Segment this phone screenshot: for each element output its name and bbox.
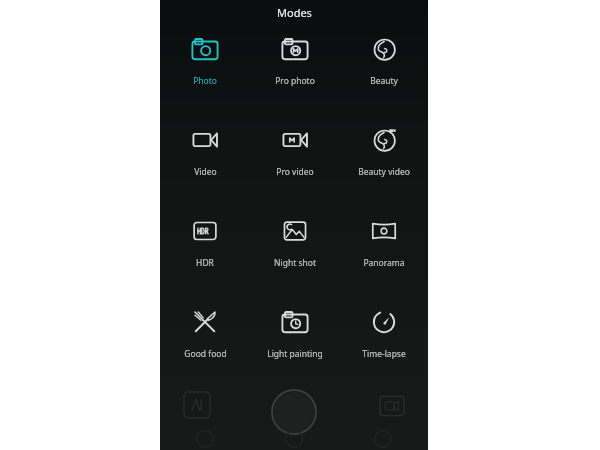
staticText: Modes [277, 5, 312, 20]
button[interactable]: Video [160, 123, 250, 178]
other: Pro photo [278, 32, 312, 66]
staticText: Pro photo [275, 75, 315, 87]
button[interactable]: Home [284, 429, 304, 449]
other: Good food [188, 305, 222, 339]
staticText: Beauty [370, 75, 398, 87]
staticText: Night shot [274, 257, 316, 269]
button[interactable]: Gallery [184, 392, 210, 418]
other: Video [188, 123, 222, 157]
button[interactable]: Beauty video [339, 123, 428, 178]
staticText: Good food [184, 348, 227, 360]
other: Beauty [367, 32, 401, 66]
other: Night shot [278, 214, 312, 248]
staticText: Beauty video [358, 166, 410, 178]
staticText: Light painting [267, 348, 323, 360]
button[interactable]: Light painting [250, 305, 339, 360]
staticText: Time-lapse [362, 348, 406, 360]
button[interactable]: Panorama [339, 214, 428, 269]
staticText: Photo [193, 75, 217, 87]
button[interactable]: Switch to video [380, 394, 404, 418]
button[interactable]: Recents [373, 429, 393, 449]
other: Light painting [278, 305, 312, 339]
other: Photo [188, 32, 222, 66]
button[interactable]: Good food [160, 305, 250, 360]
button[interactable]: Shutter [271, 389, 317, 435]
staticText: HDR [196, 257, 214, 269]
staticText: Panorama [363, 257, 405, 269]
button[interactable]: Pro photo [250, 32, 339, 87]
button[interactable]: HDR [160, 214, 250, 269]
button[interactable]: Photo [160, 32, 250, 87]
other: Pro video [278, 123, 312, 157]
staticText: Pro video [276, 166, 314, 178]
other: Beauty video [367, 123, 401, 157]
other: HDR [188, 214, 222, 248]
button[interactable]: Back [195, 429, 215, 449]
other: Time-lapse [367, 305, 401, 339]
button[interactable]: Pro video [250, 123, 339, 178]
other: Panorama [367, 214, 401, 248]
button[interactable]: Time-lapse [339, 305, 428, 360]
button[interactable]: Beauty [339, 32, 428, 87]
button[interactable]: Night shot [250, 214, 339, 269]
staticText: Video [194, 166, 217, 178]
